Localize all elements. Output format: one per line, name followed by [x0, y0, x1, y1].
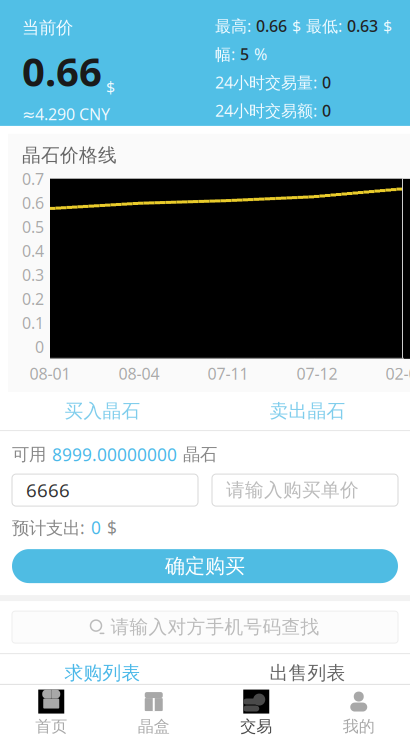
staticText: 幅: — [215, 43, 235, 64]
staticText: 0.6 — [22, 192, 44, 213]
staticText: 晶石价格线 — [22, 144, 117, 167]
staticText: $ — [383, 15, 392, 36]
staticText: MT — [62, 703, 89, 727]
staticText: 24小时交易量: — [215, 72, 317, 93]
staticText: 6666 — [26, 478, 70, 502]
staticText: 24小时交易额: — [215, 100, 317, 121]
button[interactable]: 请输入对方手机号码查找 — [12, 611, 398, 643]
staticText: 0 — [91, 516, 101, 539]
button[interactable]: 交易 — [205, 685, 307, 741]
staticText: 卖出晶石 — [269, 400, 345, 422]
staticText: 请输入对方手机号码查找 — [110, 616, 319, 638]
button[interactable]: 晶盒 — [102, 685, 205, 741]
staticText: ≈4.290 CNY — [22, 103, 110, 125]
staticText: 求购列表 — [64, 662, 140, 684]
button[interactable]: 求购列表 — [0, 654, 205, 692]
staticText: 0.63 — [347, 15, 378, 36]
staticText: 0.2 — [22, 288, 44, 309]
button[interactable]: 我的 — [307, 685, 410, 741]
staticText: 02-07 — [385, 363, 410, 384]
staticText: $ — [106, 76, 115, 97]
staticText: 我的 — [343, 717, 375, 736]
staticText: 首页 — [35, 717, 67, 736]
staticText: 确定购买 — [165, 554, 245, 578]
staticText: 08-04 — [118, 363, 159, 384]
button[interactable]: 首页 — [0, 685, 102, 741]
staticText: 0.7 — [22, 168, 44, 189]
staticText: 0.3 — [22, 264, 44, 285]
staticText: $ — [107, 516, 117, 539]
staticText: 0.1 — [22, 312, 44, 333]
staticText: 晶盒 — [138, 717, 170, 736]
staticText: 07-12 — [296, 363, 337, 384]
staticText: 0 — [322, 100, 331, 121]
staticText: 5 — [240, 43, 249, 64]
staticText: 0.4 — [22, 240, 44, 261]
staticText: 0.5 — [22, 216, 44, 237]
staticText: 0.66 — [256, 15, 287, 36]
staticText: 0 — [322, 72, 331, 93]
button[interactable]: 买入晶石 — [0, 392, 205, 430]
staticText: 预计支出: — [12, 516, 85, 539]
button[interactable]: 卖出晶石 — [205, 392, 410, 430]
staticText: 可用 — [12, 444, 46, 465]
staticText: 最低: — [306, 15, 342, 36]
staticText: 08-01 — [29, 363, 70, 384]
button[interactable]: 出售列表 — [205, 654, 410, 692]
staticText: 交易 — [240, 717, 272, 736]
staticText: 最高: — [215, 15, 251, 36]
staticText: $ — [292, 15, 301, 36]
staticText: 出售列表 — [269, 662, 345, 684]
staticText: 请输入购买单价 — [226, 479, 359, 501]
staticText: 买入晶石 — [64, 400, 140, 422]
staticText: 晶石 — [183, 444, 217, 465]
staticText: 0 — [35, 336, 44, 357]
button[interactable]: 确定购买 — [12, 549, 398, 583]
staticText: 当前价 — [22, 17, 73, 38]
staticText: 8999.00000000 — [52, 443, 177, 466]
staticText: 07-11 — [207, 363, 248, 384]
button[interactable]: MT — [0, 693, 410, 737]
staticText: % — [254, 43, 267, 64]
staticText: 0.66 — [22, 44, 102, 97]
